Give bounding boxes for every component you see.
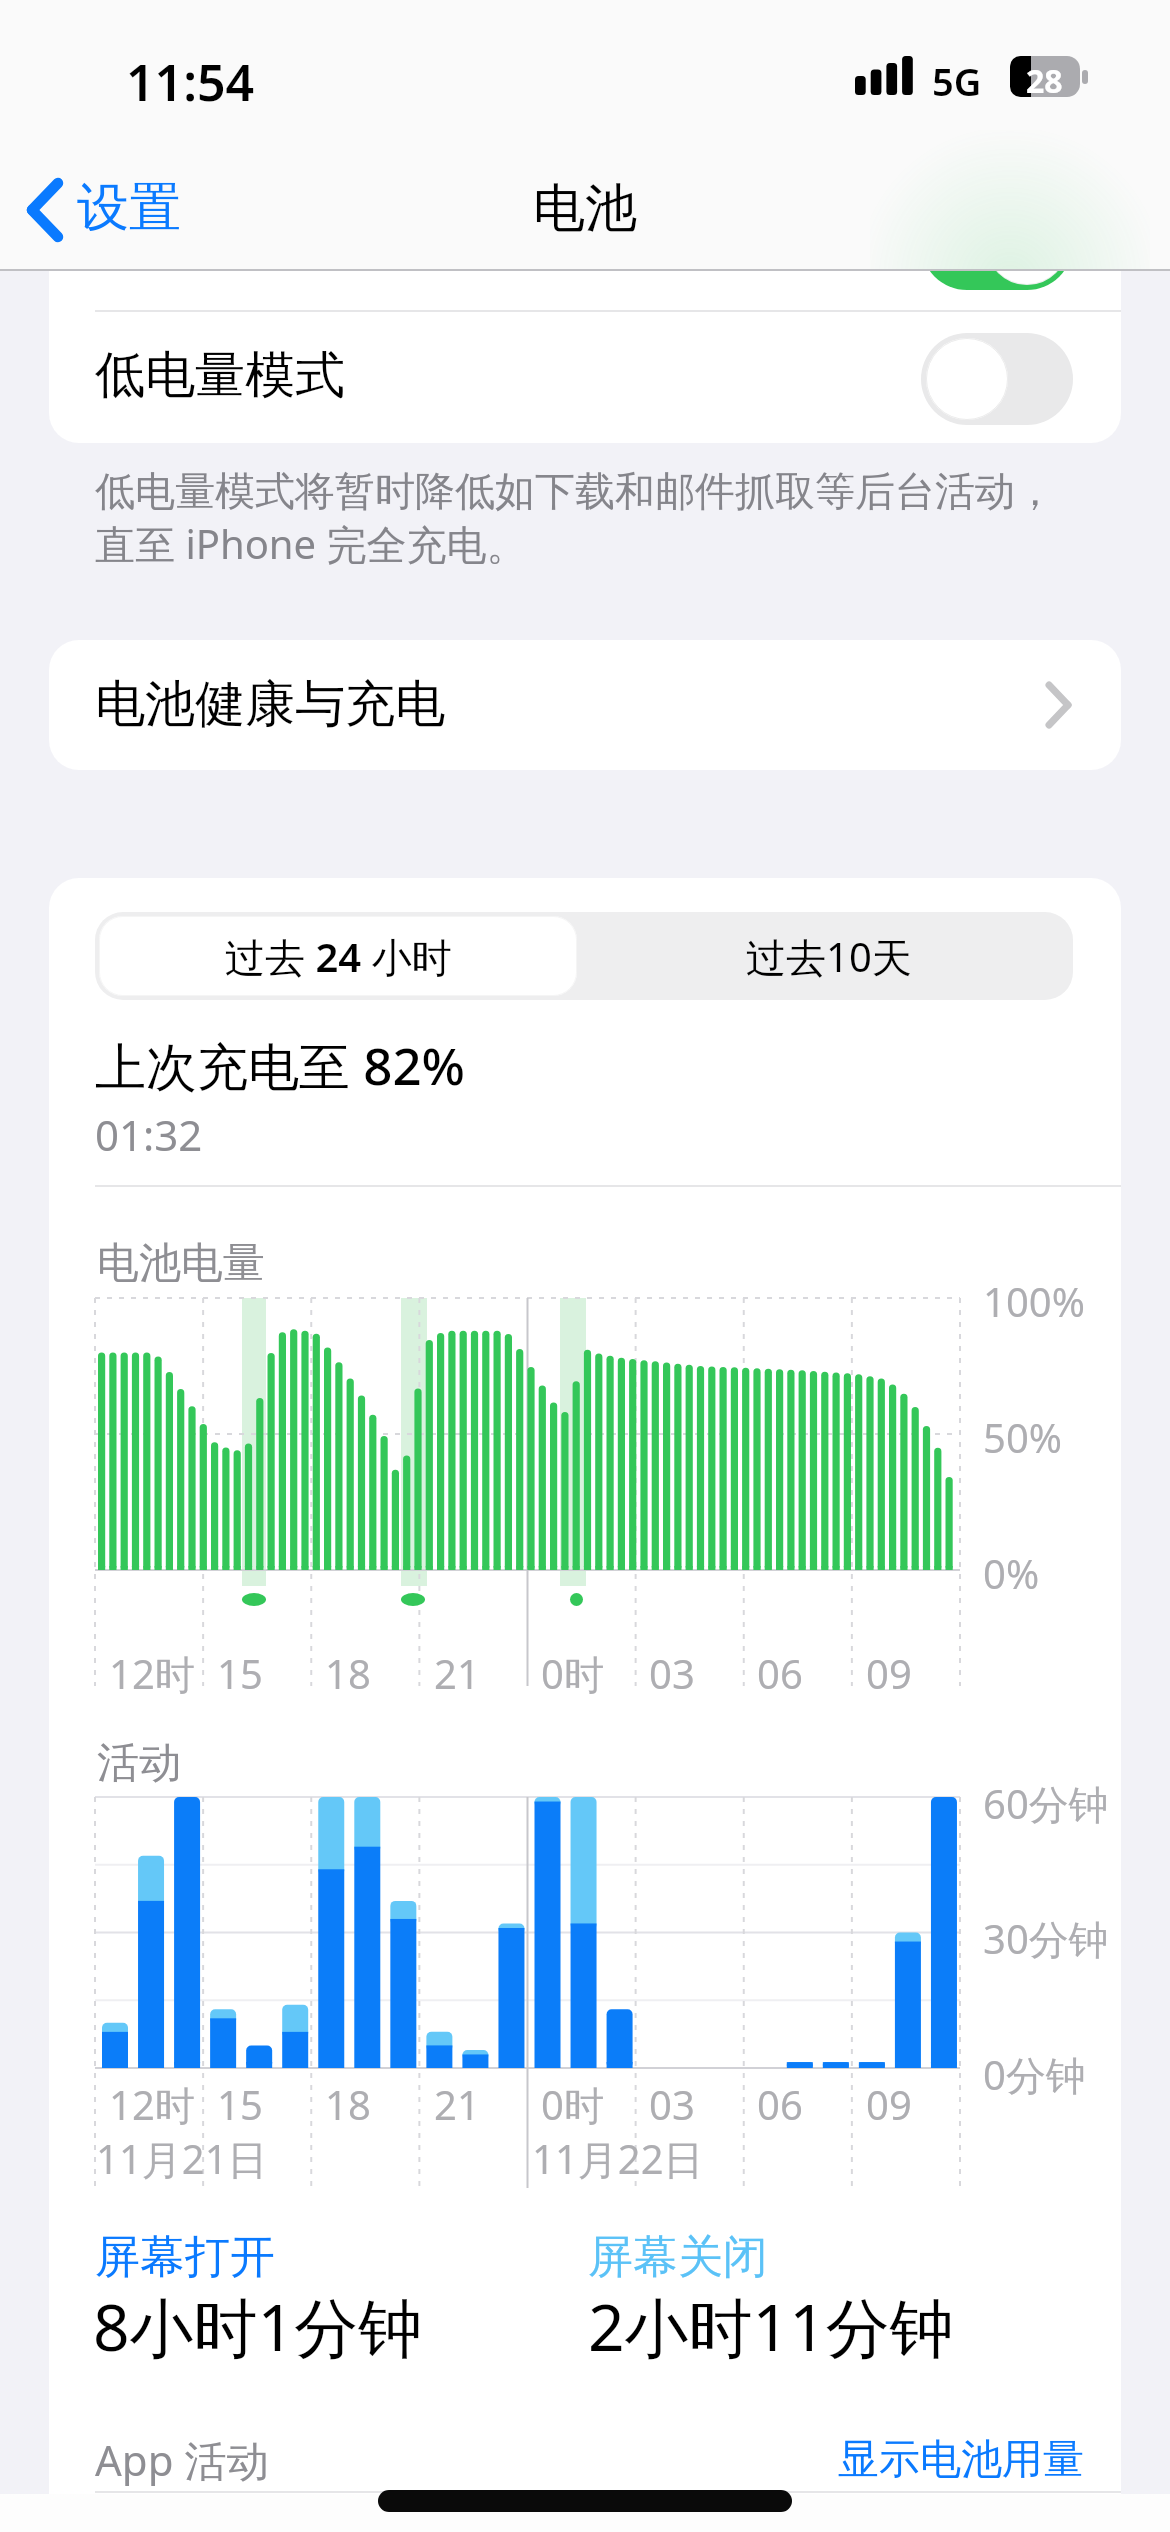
staticText: 2小时11分钟 [588,2283,954,2370]
staticText: 11月21日 [96,2131,268,2186]
staticText: 12时 [109,2077,195,2132]
staticText: 09 [866,1646,912,1700]
staticText: 11月22日 [532,2131,704,2186]
button[interactable]: 过去 24 小时 [99,916,577,996]
staticText: 上次充电至 82% [95,1030,466,1100]
staticText: 0分钟 [983,2047,1086,2102]
staticText: 18 [325,2077,371,2131]
button[interactable]: 设置 [16,170,216,250]
staticText: 屏幕关闭 [588,2229,768,2286]
staticText: 过去10天 [746,929,912,984]
staticText: 30分钟 [983,1911,1109,1966]
staticText: 设置 [77,175,181,241]
staticText: 电池健康与充电 [95,673,445,736]
staticText: 低电量模式将暂时降低如下载和邮件抓取等后台活动， 直至 iPhone 完全充电。 [95,466,1055,571]
staticText: 28 [1026,59,1063,103]
button[interactable]: 电池健康与充电 [49,640,1121,770]
staticText: 15 [217,1646,263,1700]
staticText: 06 [757,1646,803,1700]
staticText: 过去 24 小时 [225,929,452,984]
staticText: App 活动 [95,2431,269,2488]
staticText: 低电量模式 [95,344,345,407]
staticText: 电池 [533,176,637,242]
staticText: 50% [983,1410,1062,1464]
staticText: 0时 [541,2077,604,2132]
button[interactable] [921,198,1073,290]
staticText: 60分钟 [983,1776,1109,1831]
button[interactable]: 低电量模式 [49,314,1121,443]
staticText: 15 [217,2077,263,2131]
staticText: 0% [983,1546,1040,1600]
staticText: 5G [932,55,982,107]
staticText: 0时 [541,1646,604,1701]
button[interactable]: 过去10天 [584,912,1073,1000]
staticText: 09 [866,2077,912,2131]
staticText: 12时 [109,1646,195,1701]
staticText: 活动 [97,1737,181,1790]
staticText: 21 [434,1646,480,1700]
staticText: 18 [325,1646,371,1700]
staticText: 11:54 [126,48,255,116]
staticText: 8小时1分钟 [93,2283,423,2370]
staticText: 03 [649,2077,695,2131]
button[interactable] [921,333,1073,425]
button[interactable]: 显示电池用量 [838,2434,1084,2486]
staticText: 06 [757,2077,803,2131]
staticText: 21 [434,2077,480,2131]
staticText: 屏幕打开 [95,2229,275,2286]
staticText: 100% [983,1274,1085,1328]
staticText: 电池电量 [97,1237,265,1290]
staticText: 01:32 [95,1106,203,1163]
staticText: 03 [649,1646,695,1700]
